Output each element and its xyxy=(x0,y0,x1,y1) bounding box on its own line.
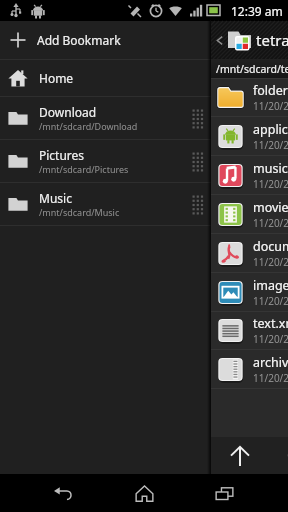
button[interactable]: Up one level xyxy=(211,437,268,474)
button[interactable]: tetra xyxy=(211,21,288,59)
staticText: Music xyxy=(39,190,72,206)
button[interactable]: Add Bookmark xyxy=(0,21,211,59)
staticText: Add Bookmark xyxy=(37,32,121,48)
button[interactable]: Back xyxy=(31,474,95,512)
staticText: Home xyxy=(39,70,74,86)
button[interactable]: document.pdf xyxy=(211,234,288,272)
staticText: application.apk xyxy=(253,121,288,138)
staticText: /mnt/sdcard/Download xyxy=(39,120,138,132)
button[interactable]: application.apk xyxy=(211,117,288,155)
button[interactable]: Music xyxy=(0,183,211,225)
button[interactable]: Home xyxy=(112,474,176,512)
button[interactable]: movie.mp4 xyxy=(211,195,288,233)
button[interactable]: archive.zip xyxy=(211,350,288,388)
staticText: 11/20/2013 xyxy=(253,99,288,113)
staticText: movie.mp4 xyxy=(253,199,288,216)
staticText: 11/20/2013 xyxy=(253,177,288,191)
staticText: /mnt/sdcard/Music xyxy=(39,206,120,218)
staticText: Download xyxy=(39,104,97,120)
staticText: text.xml xyxy=(253,315,288,332)
staticText: 12:39 am xyxy=(231,3,283,19)
button[interactable]: Pictures xyxy=(0,140,211,182)
button[interactable]: music.mp3 xyxy=(211,156,288,194)
staticText: 11/20/2013 xyxy=(253,294,288,308)
staticText: folder xyxy=(253,82,288,99)
staticText: archive.zip xyxy=(253,354,288,371)
button[interactable]: folder xyxy=(211,79,288,116)
staticText: /mnt/sdcard/Pictures xyxy=(39,163,129,175)
button[interactable]: text.xml xyxy=(211,312,288,349)
staticText: image.png xyxy=(253,277,288,294)
staticText: Pictures xyxy=(39,147,85,163)
button[interactable]: Recents xyxy=(192,474,256,512)
staticText: /mnt/sdcard/tetra xyxy=(216,62,288,76)
staticText: tetra xyxy=(256,30,288,50)
button[interactable]: Download xyxy=(0,97,211,139)
staticText: 11/20/2013 xyxy=(253,138,288,152)
staticText: 11/20/2013 xyxy=(253,255,288,269)
staticText: music.mp3 xyxy=(253,160,288,177)
staticText: document.pdf xyxy=(253,238,288,255)
staticText: 11/20/2013 xyxy=(253,216,288,230)
staticText: 11/20/2013 xyxy=(253,371,288,385)
button[interactable]: image.png xyxy=(211,273,288,311)
button[interactable]: Home xyxy=(0,60,211,96)
staticText: 11/20/2013 xyxy=(253,332,288,346)
